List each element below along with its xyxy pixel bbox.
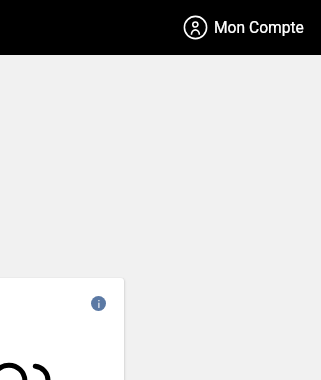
staticText: Mon Compte	[214, 19, 304, 37]
button[interactable]: Informations	[91, 296, 106, 311]
button[interactable]: Informations	[0, 278, 124, 380]
button[interactable]: Mon Compte	[179, 11, 309, 44]
